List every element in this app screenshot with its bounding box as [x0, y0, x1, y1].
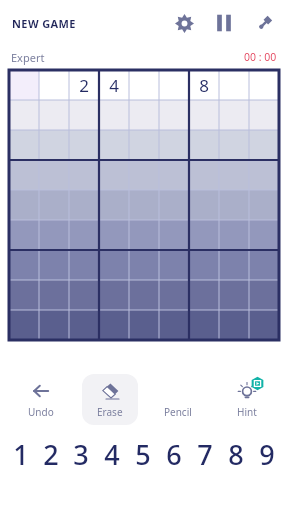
button[interactable] [219, 250, 249, 280]
button[interactable] [39, 310, 69, 340]
button[interactable] [99, 280, 129, 310]
button[interactable] [69, 280, 99, 310]
button[interactable] [129, 100, 159, 130]
button[interactable] [9, 280, 39, 310]
button[interactable] [219, 190, 249, 220]
button[interactable] [249, 160, 279, 190]
button[interactable] [189, 190, 219, 220]
button[interactable] [219, 280, 249, 310]
button[interactable] [219, 160, 249, 190]
button[interactable] [99, 190, 129, 220]
button[interactable] [129, 280, 159, 310]
button[interactable] [39, 280, 69, 310]
button[interactable] [219, 70, 249, 100]
button[interactable] [159, 310, 189, 340]
button[interactable]: 1 [6, 434, 36, 474]
button[interactable] [159, 70, 189, 100]
button[interactable]: Settings [168, 7, 200, 39]
button[interactable] [129, 70, 159, 100]
button[interactable] [129, 160, 159, 190]
button[interactable] [249, 280, 279, 310]
button[interactable]: 8 [189, 70, 219, 100]
button[interactable]: 6 [158, 434, 189, 474]
button[interactable] [9, 160, 39, 190]
button[interactable]: Erase [82, 374, 138, 425]
button[interactable]: Pencil [150, 374, 206, 425]
button[interactable] [129, 250, 159, 280]
button[interactable] [129, 190, 159, 220]
button[interactable] [189, 100, 219, 130]
button[interactable] [9, 190, 39, 220]
button[interactable] [69, 190, 99, 220]
button[interactable] [39, 250, 69, 280]
button[interactable] [39, 130, 69, 160]
button[interactable]: Undo [13, 374, 69, 425]
button[interactable] [69, 250, 99, 280]
button[interactable]: 8 [220, 434, 251, 474]
button[interactable] [69, 220, 99, 250]
button[interactable] [99, 130, 129, 160]
button[interactable] [189, 280, 219, 310]
button[interactable] [189, 310, 219, 340]
button[interactable] [69, 100, 99, 130]
button[interactable] [159, 160, 189, 190]
button[interactable] [159, 130, 189, 160]
button[interactable]: Hint [219, 374, 275, 425]
button[interactable] [249, 70, 279, 100]
button[interactable] [99, 310, 129, 340]
button[interactable] [39, 100, 69, 130]
button[interactable] [249, 250, 279, 280]
button[interactable] [249, 130, 279, 160]
button[interactable]: 5 [127, 434, 158, 474]
button[interactable]: 4 [99, 70, 129, 100]
button[interactable] [9, 130, 39, 160]
staticText: Undo [28, 405, 54, 419]
button[interactable] [69, 310, 99, 340]
button[interactable] [9, 220, 39, 250]
button[interactable] [9, 70, 39, 100]
button[interactable] [219, 220, 249, 250]
button[interactable] [39, 190, 69, 220]
button[interactable] [129, 130, 159, 160]
button[interactable] [9, 250, 39, 280]
button[interactable]: Pause [208, 7, 240, 39]
button[interactable] [99, 160, 129, 190]
button[interactable]: NEW GAME [10, 12, 78, 35]
button[interactable] [159, 100, 189, 130]
button[interactable] [39, 160, 69, 190]
button[interactable]: 4 [96, 434, 127, 474]
button[interactable] [159, 250, 189, 280]
button[interactable] [189, 160, 219, 190]
button[interactable] [249, 190, 279, 220]
button[interactable] [219, 100, 249, 130]
button[interactable] [159, 190, 189, 220]
button[interactable]: 3 [66, 434, 96, 474]
button[interactable] [189, 250, 219, 280]
button[interactable] [219, 310, 249, 340]
button[interactable] [249, 100, 279, 130]
button[interactable] [189, 220, 219, 250]
staticText: 4 [104, 436, 120, 473]
button[interactable]: Theme [248, 7, 280, 39]
button[interactable] [189, 130, 219, 160]
button[interactable] [99, 250, 129, 280]
button[interactable] [129, 220, 159, 250]
button[interactable]: 9 [251, 434, 282, 474]
button[interactable] [99, 220, 129, 250]
button[interactable] [159, 280, 189, 310]
button[interactable] [99, 100, 129, 130]
button[interactable] [69, 160, 99, 190]
button[interactable] [39, 220, 69, 250]
button[interactable] [9, 310, 39, 340]
button[interactable]: 7 [189, 434, 220, 474]
button[interactable] [129, 310, 159, 340]
button[interactable] [39, 70, 69, 100]
button[interactable]: 2 [69, 70, 99, 100]
button[interactable] [69, 130, 99, 160]
button[interactable] [249, 310, 279, 340]
button[interactable]: 2 [36, 434, 66, 474]
button[interactable] [159, 220, 189, 250]
button[interactable] [219, 130, 249, 160]
button[interactable] [9, 100, 39, 130]
button[interactable] [249, 220, 279, 250]
